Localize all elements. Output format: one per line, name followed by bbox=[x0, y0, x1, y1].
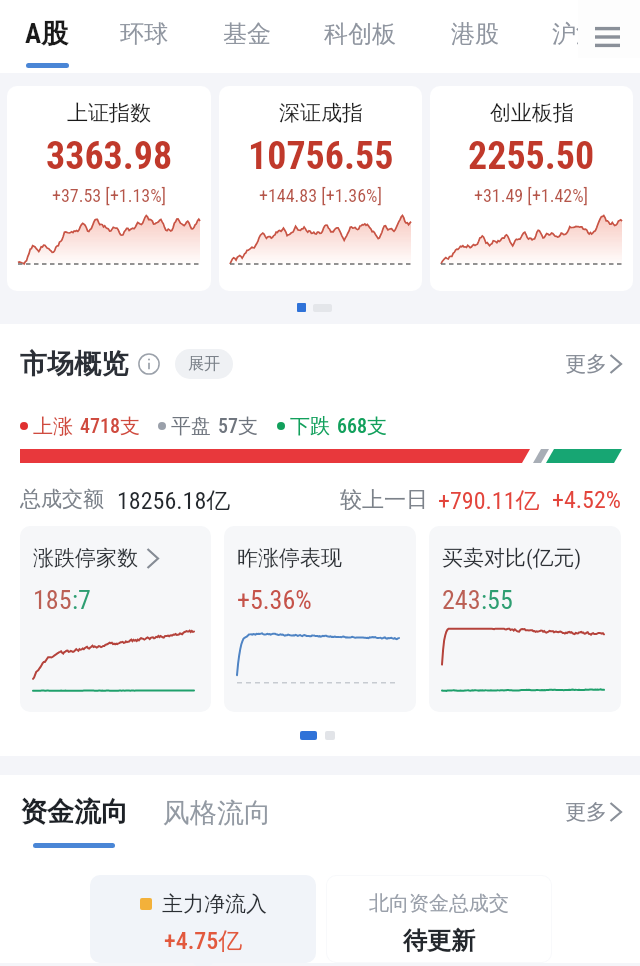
staticText: 243 bbox=[442, 585, 481, 615]
button[interactable]: 买卖对比(亿元) bbox=[429, 526, 621, 712]
button[interactable]: 沪深 bbox=[552, 0, 600, 56]
staticText: 3363.98 bbox=[46, 134, 173, 179]
staticText: 展开 bbox=[188, 354, 220, 374]
button[interactable]: 创业板指 bbox=[430, 86, 633, 291]
button[interactable]: A股 bbox=[25, 0, 69, 68]
button[interactable]: 北向资金总成交 bbox=[326, 875, 552, 963]
staticText: +31.49 [+1.42%] bbox=[474, 185, 589, 206]
staticText: 昨涨停表现 bbox=[237, 545, 342, 571]
staticText: 待更新 bbox=[403, 926, 475, 956]
button[interactable]: 更多 bbox=[565, 799, 622, 825]
staticText: :55 bbox=[481, 585, 513, 615]
staticText: +790.11亿 bbox=[438, 486, 540, 510]
staticText: 上证指数 bbox=[67, 100, 151, 126]
staticText: 买卖对比(亿元) bbox=[442, 545, 582, 571]
staticText: 涨跌停家数 bbox=[33, 545, 138, 571]
button[interactable]: 昨涨停表现 bbox=[224, 526, 416, 712]
staticText: 4718支 bbox=[80, 414, 140, 438]
staticText: 平盘 bbox=[171, 414, 211, 438]
staticText: +4.52% bbox=[552, 486, 621, 510]
staticText: 下跌 bbox=[290, 414, 330, 438]
staticText: 环球 bbox=[120, 19, 168, 49]
staticText: 较上一日 bbox=[340, 486, 428, 510]
button[interactable]: 展开 bbox=[175, 349, 233, 379]
staticText: +4.75亿 bbox=[164, 926, 243, 956]
staticText: A股 bbox=[25, 17, 69, 51]
staticText: 668支 bbox=[337, 414, 387, 438]
staticText: +5.36% bbox=[237, 585, 312, 615]
button[interactable]: 市场概览 bbox=[0, 345, 640, 383]
button[interactable]: 深证成指 bbox=[219, 86, 422, 291]
staticText: 市场概览 bbox=[20, 347, 128, 381]
staticText: 深证成指 bbox=[279, 100, 363, 126]
staticText: 185 bbox=[33, 585, 72, 615]
staticText: 主力净流入 bbox=[162, 891, 267, 917]
staticText: 更多 bbox=[565, 351, 607, 377]
staticText: 北向资金总成交 bbox=[369, 891, 509, 916]
staticText: 2255.50 bbox=[468, 134, 595, 179]
button[interactable]: 涨跌停家数 bbox=[20, 526, 211, 712]
staticText: :7 bbox=[72, 585, 91, 615]
button[interactable]: 港股 bbox=[451, 0, 499, 56]
button[interactable]: 基金 bbox=[223, 0, 271, 56]
staticText: 资金流向 bbox=[20, 795, 128, 829]
staticText: 沪深 bbox=[552, 19, 600, 49]
staticText: 10756.55 bbox=[248, 134, 394, 179]
staticText: 港股 bbox=[451, 19, 499, 49]
button[interactable]: 主力净流入 bbox=[90, 875, 316, 963]
staticText: 创业板指 bbox=[490, 100, 574, 126]
button[interactable]: 环球 bbox=[120, 0, 168, 56]
staticText: 上涨 bbox=[33, 414, 73, 438]
staticText: 更多 bbox=[565, 799, 607, 825]
button[interactable]: 上证指数 bbox=[7, 86, 211, 291]
staticText: 总成交额 bbox=[20, 486, 104, 510]
staticText: 科创板 bbox=[324, 19, 396, 49]
button[interactable]: 科创板 bbox=[324, 0, 396, 56]
staticText: 57支 bbox=[218, 414, 258, 438]
staticText: 18256.18亿 bbox=[117, 486, 231, 510]
button[interactable]: Menu bbox=[578, 0, 640, 58]
button[interactable]: 风格流向 bbox=[163, 796, 271, 830]
staticText: +144.83 [+1.36%] bbox=[259, 185, 383, 206]
button[interactable]: 更多 bbox=[565, 351, 622, 377]
staticText: 基金 bbox=[223, 19, 271, 49]
staticText: +37.53 [+1.13%] bbox=[52, 185, 167, 206]
staticText: 风格流向 bbox=[163, 796, 271, 830]
button[interactable]: 资金流向 bbox=[20, 795, 128, 848]
